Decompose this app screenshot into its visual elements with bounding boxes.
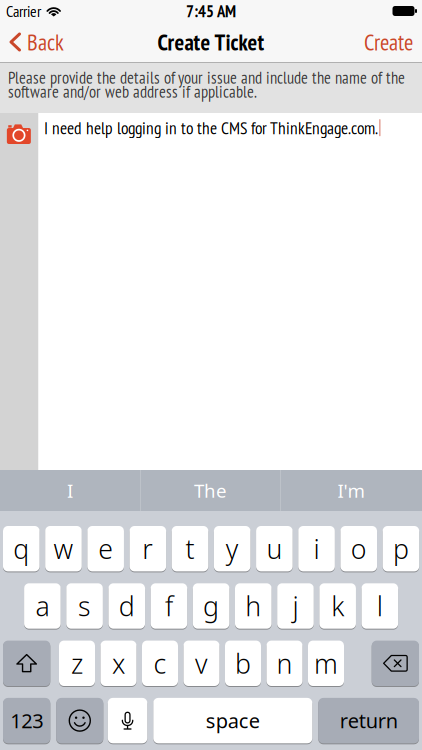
staticText: software and/or web address if applicabl… <box>8 81 257 102</box>
staticText: p <box>393 531 409 566</box>
button[interactable]: Create <box>364 22 422 62</box>
button[interactable]: z <box>59 641 95 687</box>
button[interactable]: Delete <box>372 641 419 687</box>
button[interactable]: Back <box>0 22 64 62</box>
staticText: x <box>112 646 125 681</box>
button[interactable]: e <box>87 526 124 572</box>
staticText: return <box>340 707 398 734</box>
staticText: e <box>98 531 113 566</box>
button[interactable]: b <box>225 641 261 687</box>
staticText: w <box>53 531 73 566</box>
staticText: z <box>71 646 83 681</box>
staticText: q <box>13 531 29 566</box>
staticText: f <box>165 588 173 624</box>
staticText: u <box>266 531 282 566</box>
staticText: m <box>314 646 338 681</box>
staticText: r <box>142 531 153 566</box>
staticText: d <box>119 588 135 624</box>
staticText: y <box>226 531 239 566</box>
staticText: b <box>235 646 251 681</box>
button[interactable]: return <box>318 698 419 744</box>
button[interactable]: Attach photo <box>0 113 38 155</box>
button[interactable]: r <box>129 526 166 572</box>
staticText: I <box>67 478 73 503</box>
button[interactable]: d <box>108 583 145 630</box>
button[interactable]: c <box>142 641 178 687</box>
staticText: 123 <box>10 707 43 734</box>
button[interactable]: g <box>193 583 229 630</box>
staticText: c <box>153 646 166 681</box>
staticText: k <box>331 588 344 624</box>
staticText: Please provide the details of your issue… <box>8 67 405 88</box>
staticText: Create <box>364 27 413 57</box>
button[interactable]: y <box>214 526 250 572</box>
button[interactable]: m <box>308 641 344 687</box>
staticText: Back <box>27 27 64 57</box>
button[interactable]: a <box>24 583 61 630</box>
button[interactable]: Emoji <box>56 698 103 744</box>
button[interactable]: o <box>340 526 377 572</box>
button[interactable]: Shift <box>3 641 50 687</box>
button[interactable]: t <box>172 526 208 572</box>
button[interactable]: 123 <box>3 698 50 744</box>
staticText: v <box>195 646 208 681</box>
staticText: i <box>314 531 320 566</box>
button[interactable]: Dictate <box>108 698 147 744</box>
staticText: t <box>185 531 194 566</box>
staticText: space <box>206 707 260 734</box>
button[interactable]: x <box>100 641 136 687</box>
staticText: j <box>292 588 298 624</box>
button[interactable]: l <box>361 583 398 630</box>
staticText: n <box>276 646 292 681</box>
button[interactable]: The <box>141 470 280 511</box>
button[interactable]: s <box>66 583 103 630</box>
staticText: The <box>194 478 227 503</box>
button[interactable]: q <box>3 526 40 572</box>
button[interactable]: h <box>235 583 272 630</box>
button[interactable]: k <box>319 583 356 630</box>
staticText: g <box>203 588 219 624</box>
staticText: I need help logging in to the CMS for Th… <box>44 116 378 139</box>
button[interactable]: I'm <box>281 470 421 511</box>
button[interactable]: p <box>383 526 419 572</box>
staticText: I'm <box>337 478 364 503</box>
button[interactable]: j <box>277 583 314 630</box>
button[interactable]: space <box>153 698 312 744</box>
staticText: Create Ticket <box>157 27 264 57</box>
staticText: h <box>245 588 261 624</box>
staticText: 7:45 AM <box>186 0 236 22</box>
button[interactable]: i <box>298 526 335 572</box>
staticText: s <box>78 588 91 624</box>
button[interactable]: n <box>266 641 302 687</box>
staticText: Carrier <box>6 1 41 21</box>
button[interactable]: f <box>151 583 187 630</box>
staticText: l <box>377 588 383 624</box>
button[interactable]: w <box>45 526 82 572</box>
button[interactable]: v <box>183 641 219 687</box>
staticText: a <box>35 588 49 624</box>
staticText: o <box>351 531 367 566</box>
button[interactable]: u <box>256 526 293 572</box>
button[interactable]: I <box>0 470 140 511</box>
